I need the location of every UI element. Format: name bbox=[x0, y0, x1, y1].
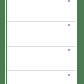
button[interactable] bbox=[7, 46, 76, 70]
button[interactable] bbox=[7, 21, 76, 46]
button[interactable] bbox=[7, 70, 76, 84]
button[interactable] bbox=[7, 0, 76, 21]
